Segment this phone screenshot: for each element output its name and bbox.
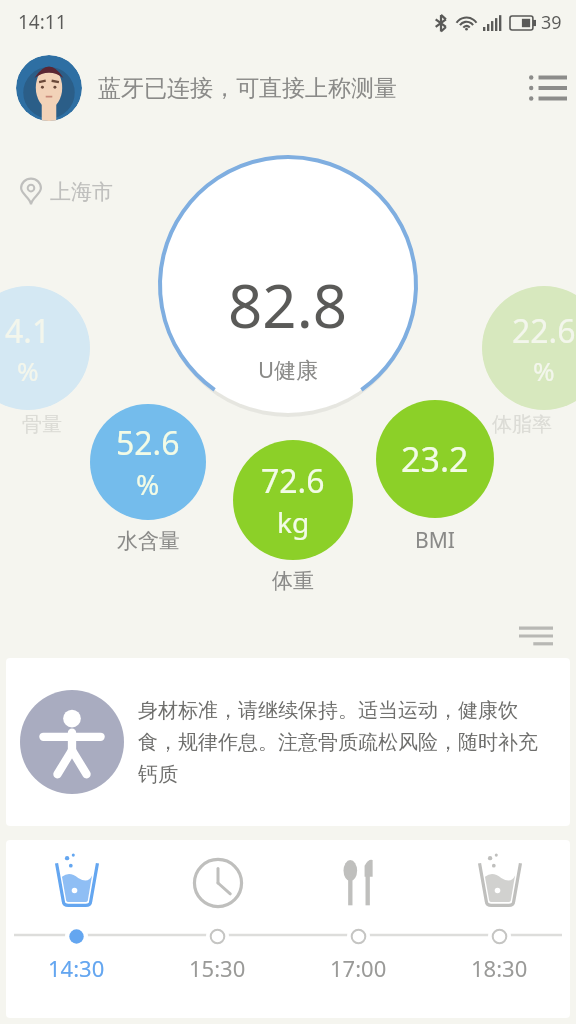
staticText: 蓝牙已连接，可直接上称测量: [98, 74, 397, 103]
button[interactable]: 17:00: [288, 840, 429, 983]
button[interactable]: 72.6: [233, 440, 353, 560]
staticText: 水含量: [117, 528, 180, 554]
staticText: 23.2: [401, 436, 469, 482]
staticText: 4.1: [5, 309, 51, 353]
button[interactable]: 15:30: [147, 840, 288, 983]
staticText: %: [17, 353, 39, 388]
button[interactable]: 22.6: [482, 286, 576, 410]
button[interactable]: Expand details: [514, 620, 558, 652]
staticText: 18:30: [471, 953, 528, 983]
staticText: kg: [277, 503, 310, 541]
staticText: 骨量: [22, 412, 62, 437]
staticText: 82.8: [228, 264, 348, 346]
staticText: 14:11: [18, 9, 67, 35]
staticText: U健康: [258, 354, 319, 384]
button[interactable]: 身材标准，请继续保持。适当运动，健康饮食，规律作息。注意骨质疏松风险，随时补充钙…: [6, 658, 570, 826]
staticText: 身材标准，请继续保持。适当运动，健康饮食，规律作息。注意骨质疏松风险，随时补充钙…: [138, 698, 556, 787]
staticText: 22.6: [512, 309, 576, 353]
button[interactable]: 14:30: [6, 840, 147, 983]
button[interactable]: Menu: [520, 60, 576, 116]
staticText: 上海市: [50, 179, 113, 205]
staticText: %: [533, 353, 555, 388]
staticText: %: [136, 465, 160, 503]
staticText: 39: [541, 10, 562, 35]
staticText: 体重: [272, 568, 314, 594]
staticText: 17:00: [330, 953, 387, 983]
button[interactable]: 18:30: [429, 840, 570, 983]
staticText: 52.6: [116, 421, 180, 465]
button[interactable]: 52.6: [90, 404, 206, 520]
staticText: 72.6: [261, 459, 325, 503]
button[interactable]: 23.2: [376, 400, 494, 518]
staticText: BMI: [415, 526, 455, 555]
button[interactable]: 4.1: [0, 286, 90, 410]
staticText: 体脂率: [492, 412, 552, 437]
staticText: 14:30: [48, 953, 105, 983]
staticText: 15:30: [189, 953, 246, 983]
button[interactable]: Profile avatar: [16, 55, 82, 121]
